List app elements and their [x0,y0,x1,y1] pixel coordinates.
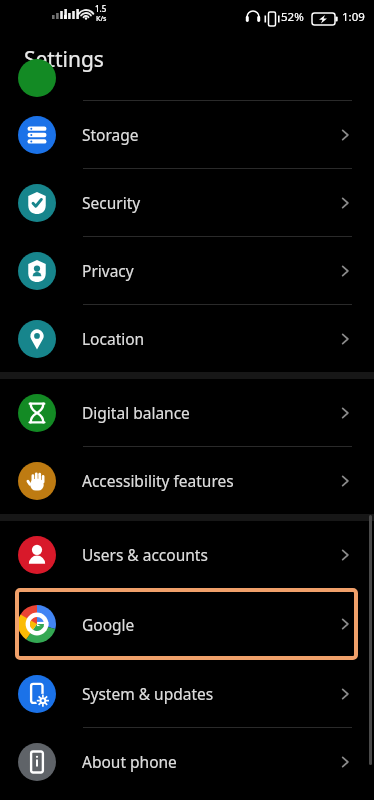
staticText: Location [82,328,336,349]
staticText: Google [82,614,336,635]
staticText: 1.5 [95,3,107,14]
staticText: Accessibility features [82,470,336,491]
button[interactable]: Location [0,305,374,372]
button[interactable]: Privacy [0,237,374,304]
staticText: Digital balance [82,402,336,423]
button[interactable]: Security [0,169,374,236]
staticText: K/s [96,14,107,24]
staticText: About phone [82,751,336,772]
staticText: Storage [82,124,336,145]
button[interactable]: Google [15,588,358,660]
button[interactable]: Users & accounts [0,521,374,588]
button[interactable]: Storage [0,101,374,168]
staticText: 1:09 [342,9,365,25]
staticText: System & updates [82,683,336,704]
button[interactable]: System & updates [0,660,374,727]
staticText: Privacy [82,260,336,281]
staticText: Security [82,192,336,213]
button[interactable]: About phone [0,728,374,795]
staticText: Settings [24,45,104,74]
staticText: 52% [281,9,304,25]
button[interactable]: Accessibility features [0,447,374,514]
button[interactable]: Digital balance [0,379,374,446]
staticText: Users & accounts [82,544,336,565]
